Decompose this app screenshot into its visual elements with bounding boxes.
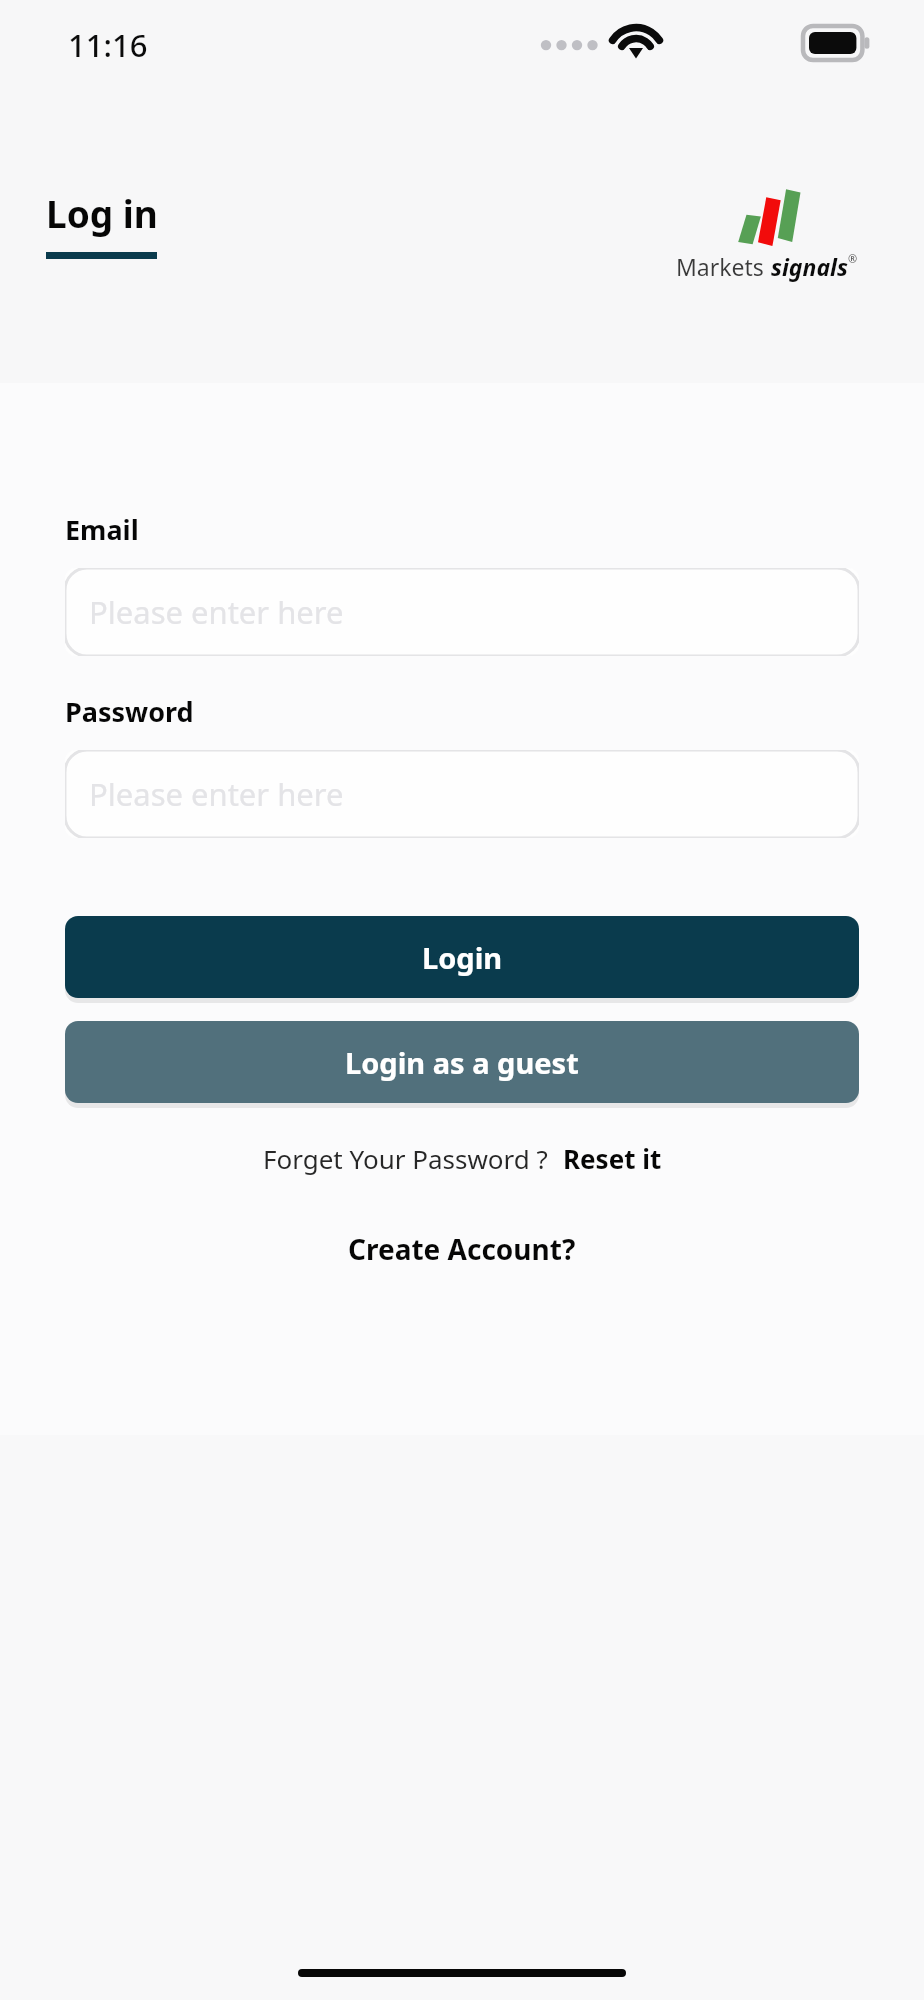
button[interactable]: Forget Your Password ? [65,1131,859,1186]
staticText: Log in [46,188,158,238]
staticText: Please enter here [89,773,344,815]
staticText: Password [65,693,194,730]
button[interactable]: Please enter here [65,568,859,656]
staticText: Create Account? [348,1230,576,1268]
button[interactable]: Create Account? [65,1220,859,1278]
staticText: ® [848,251,858,266]
staticText: Please enter here [89,591,344,633]
button[interactable]: Login as a guest [65,1021,859,1103]
staticText: Login as a guest [345,1043,579,1082]
staticText: 11:16 [68,24,148,66]
staticText: Email [65,511,139,548]
button[interactable]: Please enter here [65,750,859,838]
button[interactable]: Login [65,916,859,998]
staticText: Login [422,938,503,977]
staticText: signals [771,251,848,282]
staticText: Markets [676,251,764,282]
staticText: Reset it [563,1141,662,1176]
staticText: Forget Your Password ? [263,1141,548,1176]
